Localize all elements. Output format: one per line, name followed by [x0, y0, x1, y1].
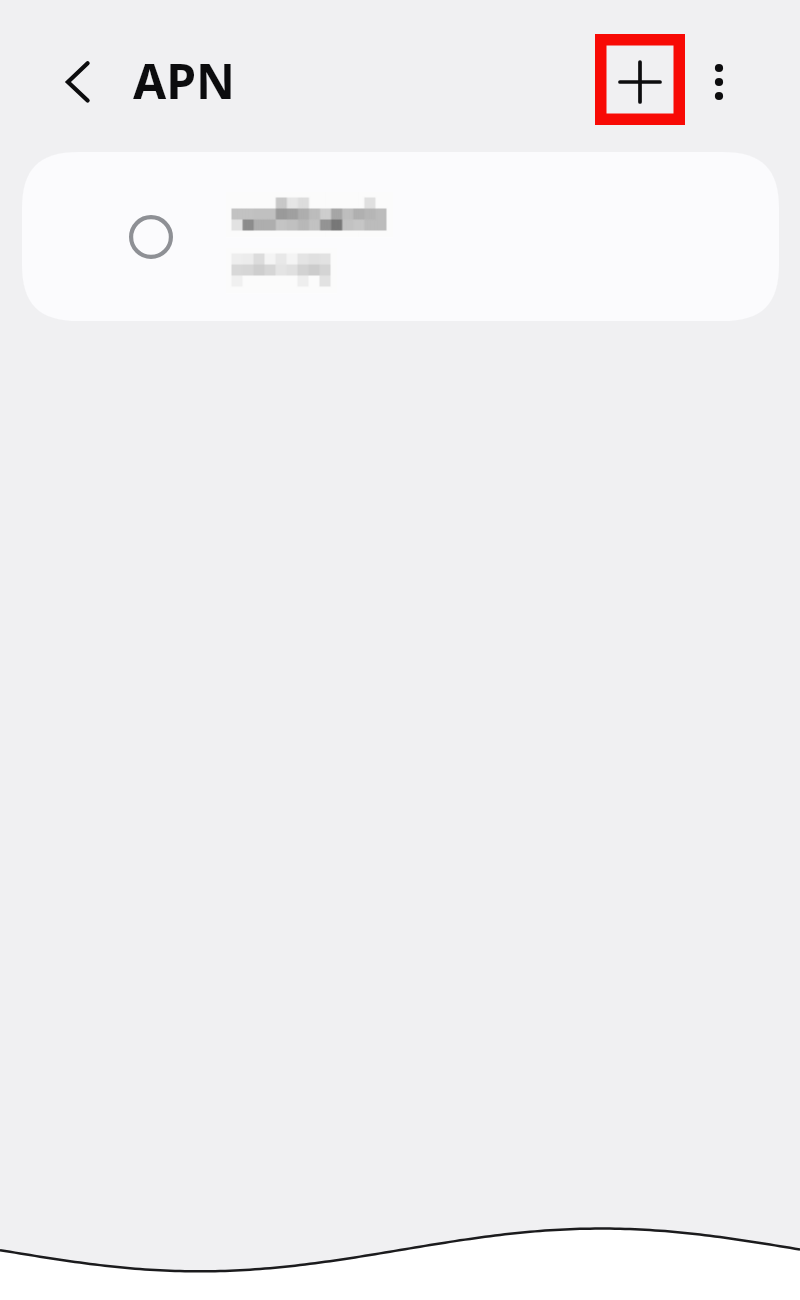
button[interactable]: APN entry: [22, 152, 779, 321]
button[interactable]: Navigate up: [46, 46, 118, 118]
button[interactable]: More options: [683, 46, 755, 118]
button[interactable]: Add APN: [595, 34, 685, 125]
staticText: APN: [133, 48, 236, 113]
